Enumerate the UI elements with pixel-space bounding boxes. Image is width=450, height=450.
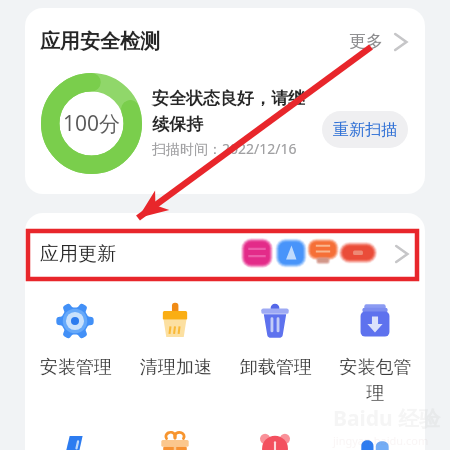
button[interactable]: 卸载管理 xyxy=(225,301,325,379)
button[interactable]: 重新扫描 xyxy=(322,111,408,148)
button[interactable]: 清理加速 xyxy=(125,301,225,379)
staticText: 安装管理 xyxy=(40,356,112,379)
staticText: 安装包管理 xyxy=(339,356,412,405)
staticText: 更多 xyxy=(349,31,383,52)
staticText: jingyan.baidu.com xyxy=(333,433,429,448)
staticText: 重新扫描 xyxy=(333,120,397,140)
staticText: 应用安全检测 xyxy=(40,29,160,54)
button[interactable]: 礼物 xyxy=(125,426,225,450)
staticText: 安全状态良好，请继续保持 xyxy=(152,88,314,135)
button[interactable]: 更多 xyxy=(345,25,414,58)
staticText: 卸载管理 xyxy=(240,356,312,379)
staticText: 扫描时间：2022/12/16 xyxy=(152,139,297,158)
button[interactable]: 安装管理 xyxy=(25,301,125,379)
staticText: 应用更新 xyxy=(40,242,116,266)
staticText: 100分 xyxy=(63,109,121,138)
button[interactable]: 提醒 xyxy=(225,426,325,450)
button[interactable]: 应用更新 xyxy=(25,213,425,295)
button[interactable]: 蓝色应用 xyxy=(25,426,125,450)
button[interactable]: 安装包管理 xyxy=(325,301,425,405)
staticText: Baidu 经验 xyxy=(333,404,441,433)
staticText: 清理加速 xyxy=(140,356,212,379)
button[interactable]: 蓝色图标 xyxy=(325,426,425,450)
